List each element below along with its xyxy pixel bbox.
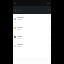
button[interactable]: App bar: [13, 6, 51, 14]
button[interactable]: [13, 41, 51, 50]
button[interactable]: [13, 23, 51, 33]
button[interactable]: [13, 14, 51, 23]
button[interactable]: [13, 33, 51, 41]
